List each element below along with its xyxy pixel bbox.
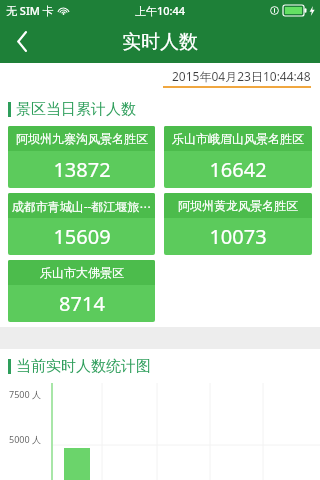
staticText: 16642 [209,156,267,183]
button[interactable]: 阿坝州九寨沟风景名胜区 [8,126,155,188]
staticText: 乐山市峨眉山风景名胜区 [172,131,304,146]
button[interactable]: 乐山市大佛景区 [8,260,155,322]
staticText: 8714 [59,290,105,317]
button[interactable]: 阿坝州黄龙风景名胜区 [164,193,312,255]
button[interactable]: Back [0,20,44,63]
staticText: 成都市青城山--都江堰旅游... [8,198,155,214]
staticText: 阿坝州黄龙风景名胜区 [178,198,298,213]
staticText: 13872 [53,156,111,183]
staticText: 乐山市大佛景区 [40,265,124,280]
staticText: 实时人数 [122,30,198,54]
staticText: 2015年04月23日10:44:48 [172,68,311,84]
staticText: 15609 [53,223,111,250]
staticText: 10073 [209,223,267,250]
staticText: 当前实时人数统计图 [16,357,151,376]
button[interactable]: 乐山市峨眉山风景名胜区 [164,126,312,188]
staticText: 5000 人 [9,433,41,445]
staticText: 7500 人 [9,388,41,400]
staticText: 上午10:44 [135,3,186,18]
staticText: 景区当日累计人数 [16,100,136,119]
staticText: 无 SIM 卡 [6,3,54,18]
staticText: 阿坝州九寨沟风景名胜区 [16,131,148,146]
button[interactable]: 成都市青城山--都江堰旅游... [8,193,155,255]
